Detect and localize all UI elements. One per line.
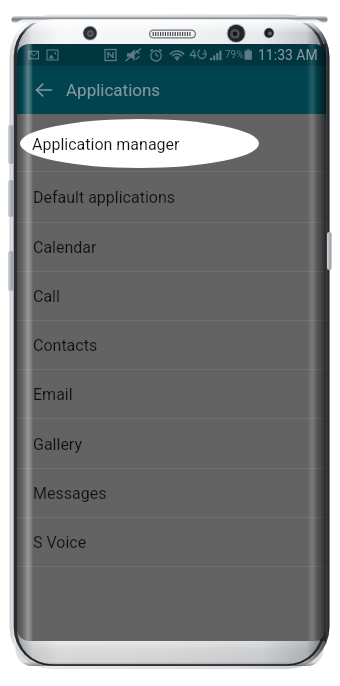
staticText: Contacts (33, 336, 98, 355)
staticText: Call (33, 287, 60, 306)
button[interactable]: Gallery (17, 419, 326, 469)
staticText: 11:33 AM (258, 47, 318, 63)
staticText: Messages (33, 484, 107, 503)
button[interactable]: Default applications (17, 172, 326, 223)
button[interactable]: Contacts (17, 321, 326, 370)
staticText: S Voice (33, 533, 87, 552)
button[interactable]: Application manager (17, 114, 326, 172)
staticText: Application manager (32, 135, 180, 154)
staticText: 79% (225, 49, 244, 61)
staticText: Gallery (33, 435, 82, 454)
button[interactable]: Navigate up (26, 66, 62, 114)
button[interactable]: Messages (17, 469, 326, 518)
staticText: Applications (66, 80, 161, 100)
button[interactable]: S Voice (17, 518, 326, 567)
button[interactable]: Email (17, 370, 326, 419)
staticText: Application manager (33, 134, 181, 153)
staticText: Email (33, 385, 73, 404)
staticText: Default applications (33, 188, 176, 207)
button[interactable]: Call (17, 272, 326, 321)
button[interactable]: Calendar (17, 223, 326, 272)
staticText: Calendar (33, 238, 97, 257)
